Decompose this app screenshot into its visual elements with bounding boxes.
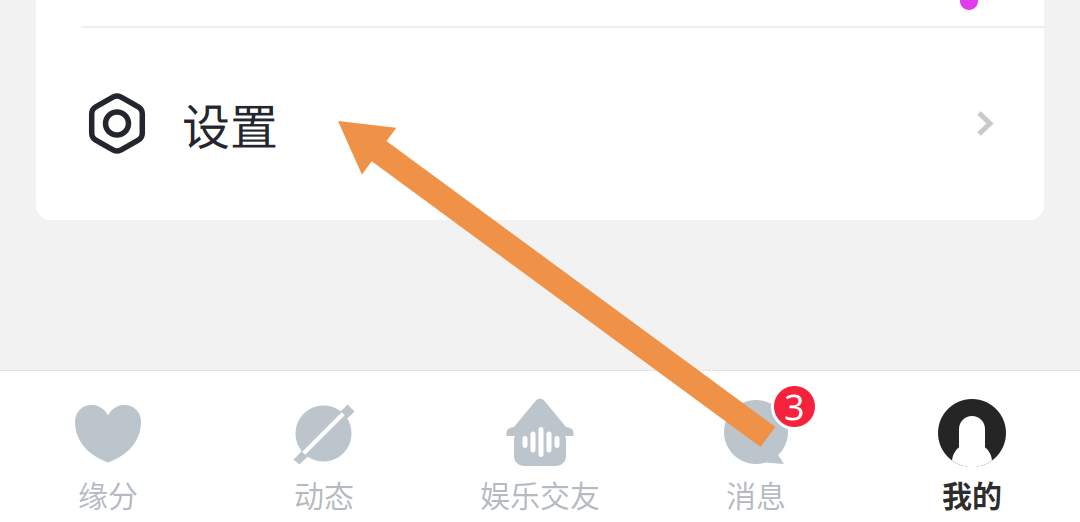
button[interactable]: 动态 [216, 371, 432, 522]
staticText: 消息 [726, 472, 786, 516]
staticText: 动态 [294, 472, 354, 516]
button[interactable]: 设置 [36, 27, 1044, 220]
button[interactable]: 我的 [864, 371, 1080, 522]
staticText: 3 [784, 383, 805, 430]
staticText: 娱乐交友 [480, 472, 600, 516]
staticText: 我的 [942, 472, 1002, 516]
staticText: 缘分 [78, 472, 138, 516]
staticText: 设置 [182, 89, 278, 158]
button[interactable]: 缘分 [0, 371, 216, 522]
button[interactable]: 消息 [648, 371, 864, 522]
button[interactable]: 娱乐交友 [432, 371, 648, 522]
